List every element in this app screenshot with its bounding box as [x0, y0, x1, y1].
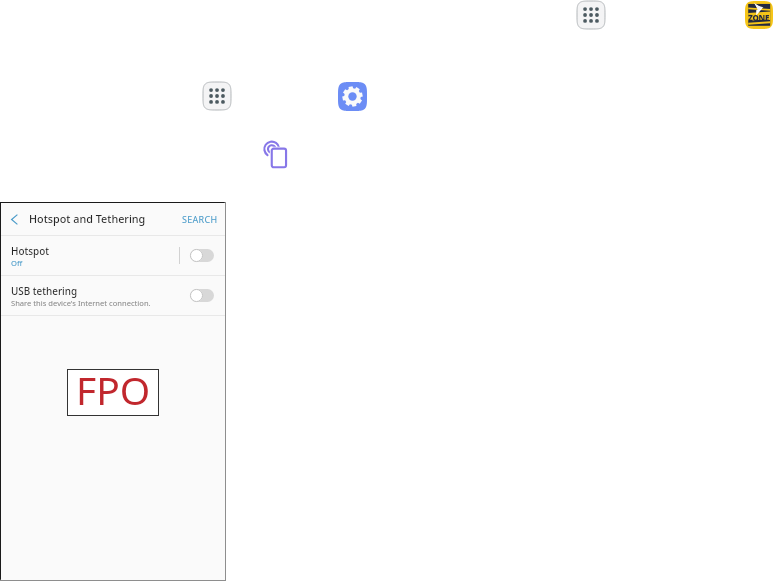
- button[interactable]: Zone app: [745, 1, 773, 29]
- staticText: Off: [11, 258, 23, 268]
- staticText: Hotspot and Tethering: [29, 211, 146, 226]
- staticText: SEARCH: [182, 213, 218, 225]
- staticText: Hotspot: [11, 244, 49, 257]
- button[interactable]: Apps: [203, 82, 231, 110]
- button[interactable]: Tethering: [262, 139, 288, 168]
- button[interactable]: Hotspot: [1, 236, 225, 276]
- button[interactable]: SEARCH: [182, 213, 225, 225]
- staticText: USB tethering: [11, 284, 78, 297]
- button[interactable]: Apps: [577, 1, 605, 29]
- button[interactable]: USB tethering: [1, 276, 225, 316]
- staticText: FPO: [76, 363, 151, 408]
- button[interactable]: Back: [1, 203, 29, 235]
- staticText: Share this device's Internet connection.: [11, 298, 151, 308]
- button[interactable]: Settings: [338, 82, 367, 111]
- staticText: ZONE: [748, 12, 770, 23]
